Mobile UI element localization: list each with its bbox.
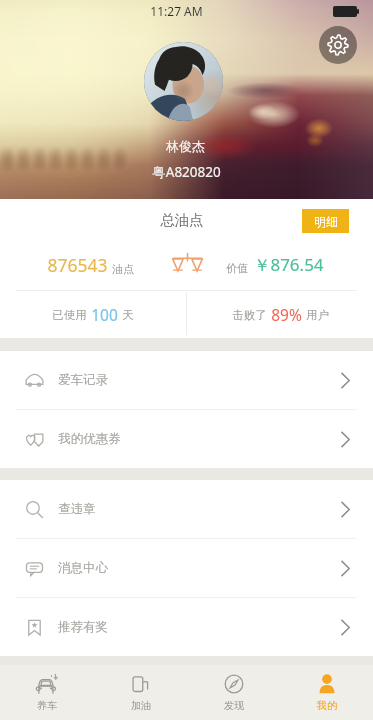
staticText: 油点 [112, 262, 134, 276]
button[interactable]: Settings [319, 26, 357, 64]
staticText: 消息中心 [58, 560, 108, 576]
staticText: 粤A820820 [152, 163, 221, 181]
staticText: 加油 [131, 699, 151, 712]
button[interactable]: 击败了 [187, 291, 373, 338]
staticText: 明细 [314, 214, 338, 229]
button[interactable]: 我的优惠券 [0, 410, 373, 468]
staticText: 100 [91, 304, 118, 325]
button[interactable]: 发现 [187, 665, 280, 720]
button[interactable]: 消息中心 [0, 539, 373, 597]
staticText: 我的优惠券 [58, 431, 121, 447]
staticText: 价值 [226, 261, 248, 275]
button[interactable]: 养车 [0, 665, 94, 720]
button[interactable]: 明细 [302, 209, 349, 233]
staticText: 击败了 [232, 308, 267, 322]
button[interactable]: 查违章 [0, 480, 373, 538]
staticText: 用户 [306, 308, 329, 322]
button[interactable]: 推荐有奖 [0, 598, 373, 656]
staticText: 推荐有奖 [58, 619, 108, 635]
staticText: 发现 [224, 699, 244, 712]
staticText: 爱车记录 [58, 372, 108, 388]
button[interactable]: 爱车记录 [0, 351, 373, 409]
staticText: 89% [271, 304, 302, 325]
staticText: 已使用 [52, 308, 87, 322]
staticText: 查违章 [58, 501, 96, 517]
button[interactable]: 我的 [280, 665, 373, 720]
button[interactable]: 加油 [94, 665, 187, 720]
staticText: ￥876.54 [253, 253, 324, 276]
staticText: 天 [122, 308, 134, 322]
staticText: 总油点 [160, 211, 204, 229]
staticText: 11:27 AM [150, 3, 203, 19]
button[interactable]: Avatar [144, 42, 223, 121]
staticText: 养车 [37, 699, 57, 712]
button[interactable]: 已使用 [0, 291, 186, 338]
staticText: 我的 [317, 699, 337, 712]
staticText: 876543 [47, 253, 108, 277]
staticText: 林俊杰 [166, 138, 205, 154]
